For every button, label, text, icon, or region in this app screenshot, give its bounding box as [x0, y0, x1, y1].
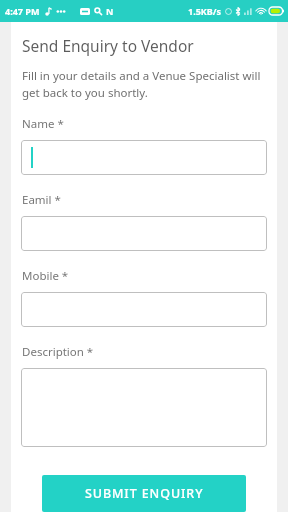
staticText: Name *: [22, 116, 64, 132]
staticText: SUBMIT ENQUIRY: [85, 485, 204, 502]
staticText: Eamil *: [22, 192, 61, 208]
staticText: Mobile *: [22, 268, 69, 284]
staticText: Send Enquiry to Vendor: [22, 35, 194, 56]
button[interactable]: [21, 292, 267, 327]
staticText: 4:47 PM: [5, 5, 40, 17]
button[interactable]: SUBMIT ENQUIRY: [42, 475, 246, 512]
button[interactable]: [21, 140, 267, 175]
staticText: N: [106, 5, 114, 17]
button[interactable]: [21, 216, 267, 251]
staticText: 1.5KB/s: [188, 5, 222, 17]
staticText: Fill in your details and a Venue Special…: [22, 68, 261, 100]
button[interactable]: [21, 368, 267, 447]
staticText: Description *: [22, 344, 94, 360]
